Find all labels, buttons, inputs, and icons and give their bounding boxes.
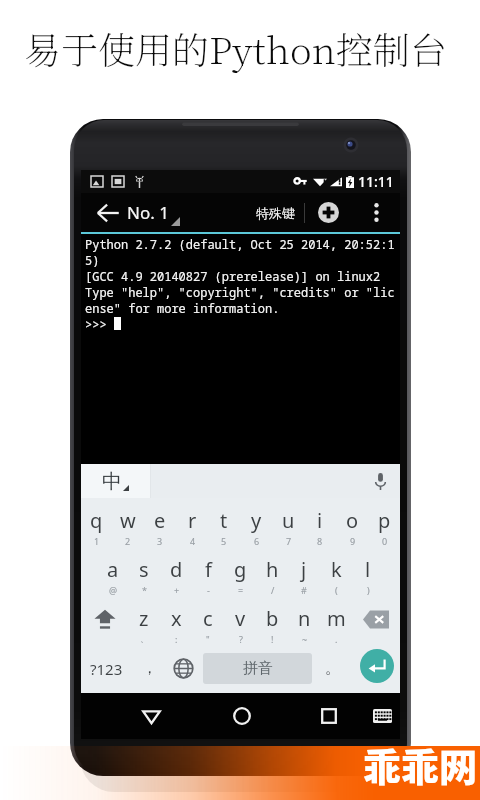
staticText: 1 (94, 535, 100, 547)
staticText: - (207, 584, 210, 596)
staticText: 易于使用的Python控制台 (24, 21, 447, 74)
staticText: ?123 (90, 659, 123, 679)
staticText: # (301, 584, 307, 596)
staticText: Type "help", "copyright", "credits" or "… (85, 284, 395, 300)
staticText: 乖乖网 (363, 737, 478, 792)
button[interactable]: Shift (81, 595, 128, 644)
button[interactable]: x (160, 595, 192, 644)
button[interactable]: g (224, 546, 256, 595)
staticText: 8 (317, 535, 323, 547)
button[interactable]: z (128, 595, 160, 644)
staticText: s (139, 556, 149, 583)
button[interactable]: Switch language (166, 644, 200, 693)
staticText: 6 (254, 535, 260, 547)
button[interactable]: p (368, 498, 400, 546)
button[interactable]: More options (352, 193, 400, 232)
button[interactable]: a (97, 546, 128, 595)
button[interactable]: h (256, 546, 288, 595)
button[interactable]: Back (81, 193, 126, 232)
staticText: b (266, 605, 279, 632)
staticText: h (266, 556, 279, 583)
staticText: 5 (221, 535, 227, 547)
staticText: 2 (125, 535, 131, 547)
button[interactable]: r (176, 498, 208, 546)
staticText: 。 (325, 659, 340, 678)
staticText: 4 (190, 535, 196, 547)
staticText: c (203, 605, 213, 632)
staticText: @ (109, 584, 118, 596)
button[interactable]: Switch keyboard (359, 693, 405, 739)
button[interactable]: j (288, 546, 320, 595)
button[interactable]: b (256, 595, 288, 644)
button[interactable]: u (272, 498, 304, 546)
button[interactable]: m (320, 595, 352, 644)
staticText: = (238, 584, 244, 596)
staticText: [GCC 4.9 20140827 (prerelease)] on linux… (85, 268, 381, 284)
button[interactable]: y (240, 498, 272, 546)
button[interactable]: v (224, 595, 256, 644)
button[interactable]: s (128, 546, 160, 595)
staticText: 11:11 (358, 172, 394, 191)
button[interactable]: Backspace (352, 595, 400, 644)
staticText: i (317, 507, 323, 534)
staticText: p (378, 507, 391, 534)
button[interactable]: f (192, 546, 224, 595)
button[interactable]: ?123 (81, 644, 132, 693)
button[interactable]: k (320, 546, 352, 595)
button[interactable]: 。 (315, 644, 349, 693)
button[interactable]: c (192, 595, 224, 644)
button[interactable]: Home (217, 693, 266, 739)
button[interactable]: w (112, 498, 144, 546)
staticText: k (331, 556, 342, 583)
staticText: Python 2.7.2 (default, Oct 25 2014, 20:5… (85, 236, 395, 252)
staticText: r (188, 507, 197, 534)
button[interactable]: n (288, 595, 320, 644)
button[interactable]: Add (305, 193, 352, 232)
button[interactable]: q (81, 498, 112, 546)
staticText: ) (367, 584, 370, 596)
button[interactable]: 中 (81, 464, 150, 498)
staticText: ense" for more information. (85, 300, 280, 316)
staticText: 9 (350, 535, 356, 547)
button[interactable]: 拼音 (203, 653, 312, 684)
staticText: No. 1 (127, 201, 169, 224)
staticText: ， (142, 659, 157, 678)
button[interactable]: Enter (360, 649, 394, 683)
staticText: v (235, 605, 246, 632)
staticText: 拼音 (243, 659, 273, 678)
button[interactable]: i (304, 498, 336, 546)
staticText: u (282, 507, 295, 534)
staticText: n (298, 605, 311, 632)
button[interactable]: Voice input (360, 464, 400, 498)
button[interactable]: e (144, 498, 176, 546)
staticText: . (335, 633, 338, 645)
staticText: f (205, 556, 212, 583)
staticText: w (120, 507, 136, 534)
staticText: : (175, 633, 178, 645)
staticText: >>> (85, 316, 107, 331)
button[interactable]: l (352, 546, 384, 595)
staticText: 中 (102, 469, 122, 494)
staticText: 7 (286, 535, 292, 547)
staticText: j (301, 556, 307, 583)
staticText: o (346, 507, 359, 534)
staticText: ( (335, 584, 338, 596)
staticText: g (234, 556, 247, 583)
staticText: 3 (157, 535, 163, 547)
button[interactable]: Recent apps (304, 693, 353, 739)
staticText: d (170, 556, 183, 583)
button[interactable]: 特殊键 (251, 193, 300, 232)
button[interactable]: ， (132, 644, 166, 693)
button[interactable]: d (160, 546, 192, 595)
staticText: + (174, 584, 180, 596)
staticText: 5) (85, 252, 100, 268)
button[interactable]: t (208, 498, 240, 546)
staticText: ? (239, 633, 243, 645)
staticText: / (271, 584, 275, 596)
button[interactable]: Back (127, 693, 176, 739)
staticText: 特殊键 (256, 205, 295, 221)
button[interactable]: o (336, 498, 368, 546)
staticText: ~ (302, 633, 308, 645)
staticText: t (220, 507, 228, 534)
staticText: ! (271, 633, 274, 645)
